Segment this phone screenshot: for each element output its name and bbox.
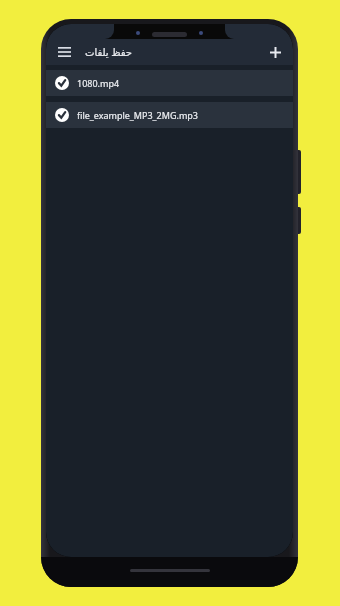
staticText: file_example_MP3_2MG.mp3	[77, 109, 198, 121]
button[interactable]: Menu	[53, 41, 75, 63]
button[interactable]: 1080.mp4	[46, 70, 293, 96]
staticText: 1080.mp4	[77, 77, 120, 89]
button[interactable]: file_example_MP3_2MG.mp3	[46, 102, 293, 128]
staticText: حفظ يلفات	[85, 45, 132, 59]
button[interactable]: Add	[264, 41, 286, 63]
